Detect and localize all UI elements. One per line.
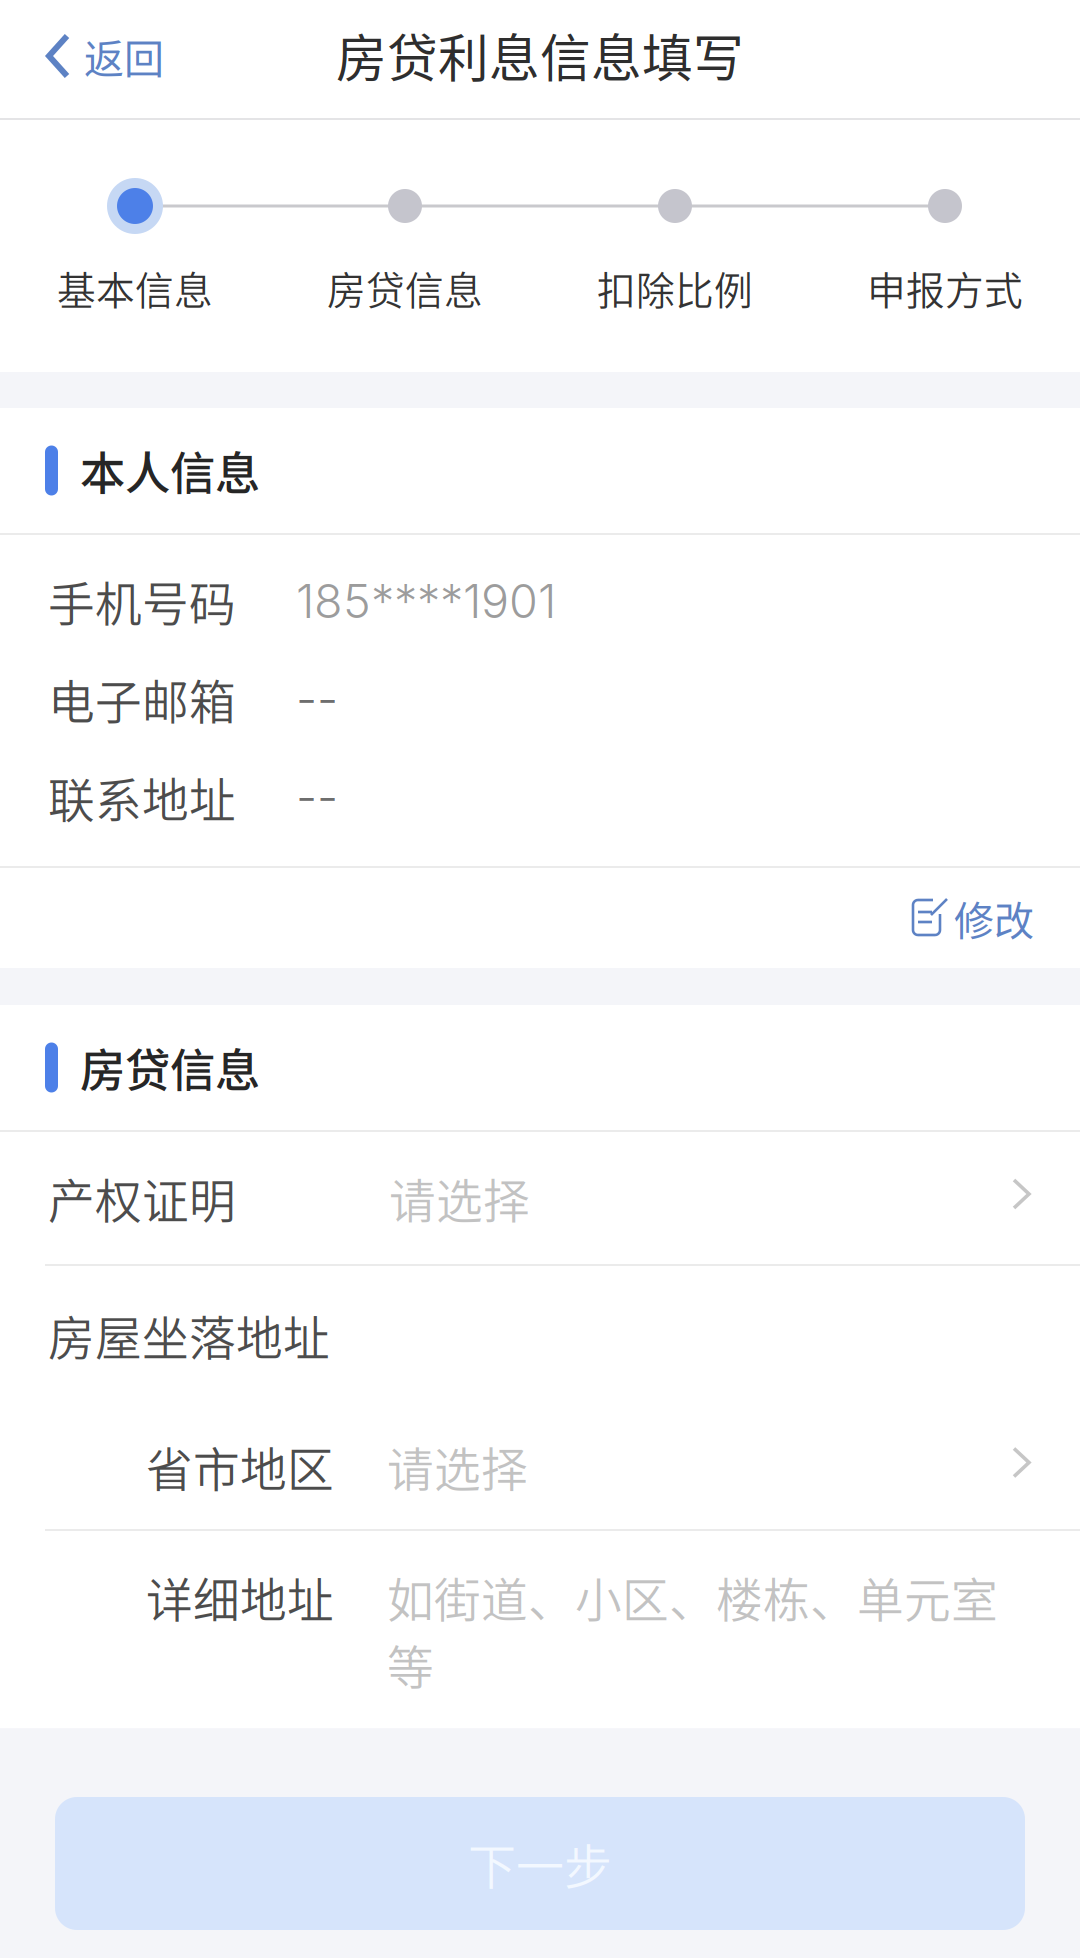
staticText: 电子邮箱 (48, 665, 236, 733)
staticText: 产权证明 (48, 1164, 236, 1232)
staticText: -- (296, 671, 338, 727)
staticText: 房贷利息信息填写 (336, 18, 744, 92)
staticText: 下一步 (468, 1829, 612, 1898)
staticText: 本人信息 (80, 438, 260, 503)
staticText: 请选择 (387, 1433, 528, 1500)
staticText: 房贷信息 (327, 260, 483, 316)
staticText: 申报方式 (867, 260, 1023, 316)
staticText: 房屋坐落地址 (48, 1301, 330, 1369)
staticText: 如街道、小区、楼栋、单元室等 (387, 1563, 998, 1698)
staticText: 省市地区 (146, 1433, 334, 1500)
button[interactable]: 修改 (0, 868, 1080, 968)
staticText: 详细地址 (146, 1563, 334, 1631)
staticText: 手机号码 (48, 567, 236, 635)
button[interactable]: 产权证明 (0, 1132, 1080, 1264)
staticText: 房贷信息 (80, 1035, 260, 1100)
staticText: 返回 (84, 27, 164, 85)
staticText: 请选择 (389, 1164, 530, 1232)
button[interactable]: 省市地区 (0, 1404, 1080, 1529)
button[interactable]: 返回 (0, 0, 194, 118)
staticText: 扣除比例 (597, 260, 753, 316)
staticText: -- (296, 769, 338, 825)
staticText: 基本信息 (57, 260, 213, 316)
staticText: 联系地址 (48, 763, 236, 831)
staticText: 185****1901 (296, 573, 556, 629)
staticText: 修改 (954, 889, 1034, 947)
button[interactable]: 详细地址 (0, 1531, 1080, 1728)
